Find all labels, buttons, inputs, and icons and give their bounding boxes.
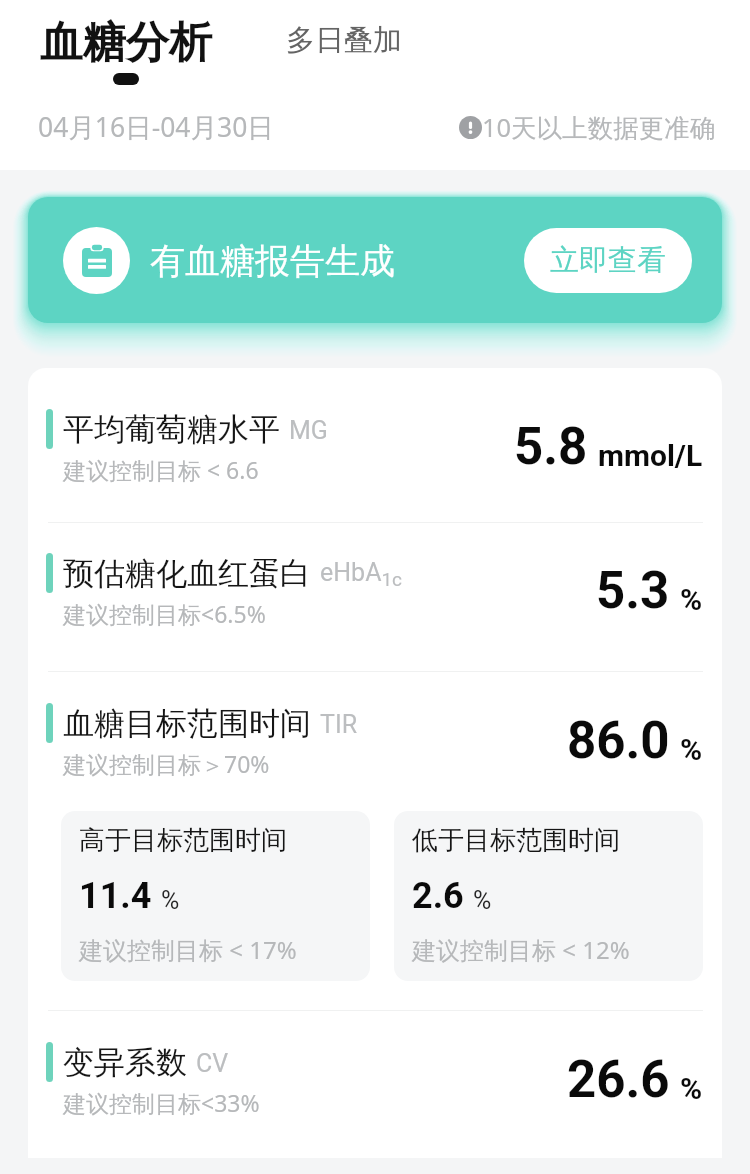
staticText: 平均葡萄糖水平: [63, 410, 280, 449]
staticText: 建议控制目标 < 6.6: [63, 454, 259, 485]
staticText: 血糖目标范围时间: [63, 704, 311, 743]
staticText: CV: [196, 1049, 229, 1078]
staticText: TIR: [320, 710, 358, 739]
staticText: 建议控制目标<6.5%: [63, 598, 266, 629]
staticText: 建议控制目标 < 17%: [79, 933, 297, 966]
staticText: 低于目标范围时间: [412, 824, 620, 857]
button[interactable]: 预估糖化血红蛋白: [28, 523, 722, 671]
staticText: mmol/L: [598, 438, 703, 473]
staticText: 04月16日-04月30日: [38, 109, 274, 145]
staticText: 有血糖报告生成: [150, 239, 395, 283]
other: Report: [82, 244, 112, 277]
staticText: eHbA1c: [320, 558, 403, 591]
button[interactable]: 低于目标范围时间: [394, 811, 703, 981]
staticText: MG: [289, 416, 328, 445]
button[interactable]: 平均葡萄糖水平: [28, 368, 722, 522]
staticText: 86.0: [567, 711, 670, 771]
staticText: 高于目标范围时间: [79, 824, 287, 857]
staticText: 10天以上数据更准确: [482, 110, 716, 145]
staticText: 变异系数: [63, 1043, 187, 1082]
button[interactable]: 立即查看: [524, 228, 692, 293]
staticText: 预估糖化血红蛋白: [63, 554, 311, 593]
button[interactable]: 高于目标范围时间: [61, 811, 370, 981]
staticText: 血糖分析: [40, 16, 212, 70]
staticText: 5.3: [596, 561, 670, 621]
staticText: 5.8: [514, 417, 588, 477]
staticText: %: [680, 732, 703, 767]
button[interactable]: 血糖分析: [40, 16, 212, 85]
staticText: 立即查看: [550, 242, 666, 279]
other: Info: [459, 116, 482, 139]
staticText: %: [161, 886, 180, 915]
staticText: 建议控制目标 < 12%: [412, 933, 630, 966]
staticText: %: [680, 1071, 703, 1106]
staticText: 26.6: [567, 1050, 670, 1110]
button[interactable]: 变异系数: [28, 1011, 722, 1158]
staticText: 建议控制目标＞70%: [63, 748, 270, 779]
staticText: %: [473, 886, 492, 915]
staticText: 2.6: [412, 875, 464, 917]
staticText: %: [680, 582, 703, 617]
staticText: 11.4: [79, 875, 152, 917]
button[interactable]: Report: [28, 197, 722, 323]
button[interactable]: 多日叠加: [286, 22, 402, 59]
staticText: 建议控制目标<33%: [63, 1087, 260, 1118]
button[interactable]: 血糖目标范围时间: [28, 672, 722, 1010]
